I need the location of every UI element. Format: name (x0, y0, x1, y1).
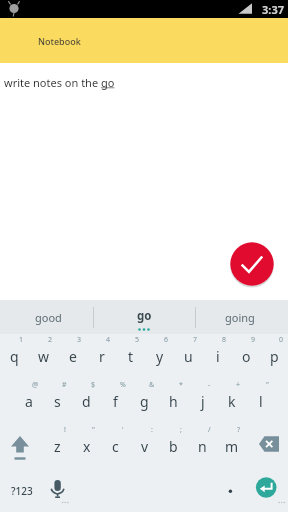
staticText: n (198, 437, 207, 456)
staticText: ! (64, 425, 66, 435)
staticText: z (54, 437, 61, 456)
staticText: @ (32, 380, 39, 390)
staticText: c (112, 437, 119, 456)
staticText: 3 (77, 335, 82, 345)
staticText: 4 (106, 335, 111, 345)
button[interactable]: y (145, 334, 174, 379)
staticText: w (38, 347, 50, 366)
button[interactable]: t (116, 334, 145, 379)
staticText: 5 (135, 335, 140, 345)
staticText: 7 (193, 335, 198, 345)
staticText: + (236, 380, 241, 390)
staticText: 0 (279, 335, 284, 345)
staticText: t (128, 347, 134, 366)
button[interactable] (0, 424, 43, 469)
button[interactable]: a (14, 379, 43, 424)
staticText: $ (91, 380, 96, 390)
staticText: s (54, 392, 61, 411)
staticText: x (83, 437, 91, 456)
button[interactable]: p (261, 334, 288, 379)
button[interactable]: h (159, 379, 188, 424)
staticText: / (208, 425, 211, 435)
button[interactable]: n (188, 424, 217, 469)
button[interactable]: o (232, 334, 261, 379)
staticText: b (169, 437, 178, 456)
staticText: y (156, 347, 164, 366)
button[interactable]: l (246, 379, 275, 424)
staticText: ; (180, 425, 182, 435)
staticText: % (120, 380, 126, 390)
button[interactable]: good (0, 300, 96, 334)
button[interactable]: ?123 (0, 469, 43, 512)
staticText: m (225, 437, 239, 456)
button[interactable]: c (101, 424, 130, 469)
staticText: * (179, 380, 183, 390)
staticText: 8 (222, 335, 227, 345)
staticText: q (10, 347, 19, 366)
button[interactable] (245, 469, 288, 512)
button[interactable]: q (0, 334, 29, 379)
staticText: 1 (19, 335, 24, 345)
staticText: j (201, 392, 205, 411)
staticText: g (140, 392, 149, 411)
staticText: r (99, 347, 105, 366)
staticText: a (25, 392, 33, 411)
staticText: good (35, 310, 62, 325)
staticText: & (149, 380, 155, 390)
button[interactable] (43, 469, 72, 512)
staticText: Notebook (38, 35, 81, 47)
button[interactable]: k (217, 379, 246, 424)
button[interactable]: r (87, 334, 116, 379)
button[interactable]: s (43, 379, 72, 424)
button[interactable]: i (203, 334, 232, 379)
staticText: write notes on the go (4, 75, 115, 90)
staticText: d (82, 392, 91, 411)
staticText: v (141, 437, 149, 456)
staticText: i (216, 347, 220, 366)
staticText: " (92, 425, 95, 435)
staticText: ? (237, 425, 241, 435)
button[interactable]: d (72, 379, 101, 424)
button[interactable]: b (159, 424, 188, 469)
staticText: " (266, 380, 269, 390)
button[interactable]: w (29, 334, 58, 379)
staticText: : (151, 425, 153, 435)
staticText: o (242, 347, 251, 366)
button[interactable]: going (192, 300, 288, 334)
button[interactable] (230, 242, 274, 286)
staticText: 9 (251, 335, 256, 345)
staticText: going (225, 310, 255, 325)
button[interactable]: u (174, 334, 203, 379)
button[interactable]: m (217, 424, 246, 469)
staticText: 6 (164, 335, 169, 345)
staticText: p (270, 347, 279, 366)
button[interactable]: f (101, 379, 130, 424)
button[interactable]: go (96, 300, 192, 334)
button[interactable]: x (72, 424, 101, 469)
staticText: k (228, 392, 236, 411)
staticText: l (259, 392, 263, 411)
button[interactable]: z (43, 424, 72, 469)
staticText: - (208, 380, 211, 390)
staticText: f (113, 392, 118, 411)
button[interactable]: g (130, 379, 159, 424)
staticText: 3:37 (262, 2, 284, 17)
staticText: # (62, 380, 67, 390)
staticText: go (137, 308, 152, 324)
staticText: ' (122, 425, 124, 435)
button[interactable] (246, 424, 288, 469)
staticText: h (169, 392, 178, 411)
button[interactable] (216, 469, 245, 512)
staticText: ?123 (11, 484, 33, 498)
button[interactable]: j (188, 379, 217, 424)
button[interactable]: v (130, 424, 159, 469)
button[interactable]: Notebook (0, 18, 288, 63)
staticText: 2 (48, 335, 53, 345)
staticText: e (69, 347, 77, 366)
button[interactable]: e (58, 334, 87, 379)
staticText: u (184, 347, 193, 366)
